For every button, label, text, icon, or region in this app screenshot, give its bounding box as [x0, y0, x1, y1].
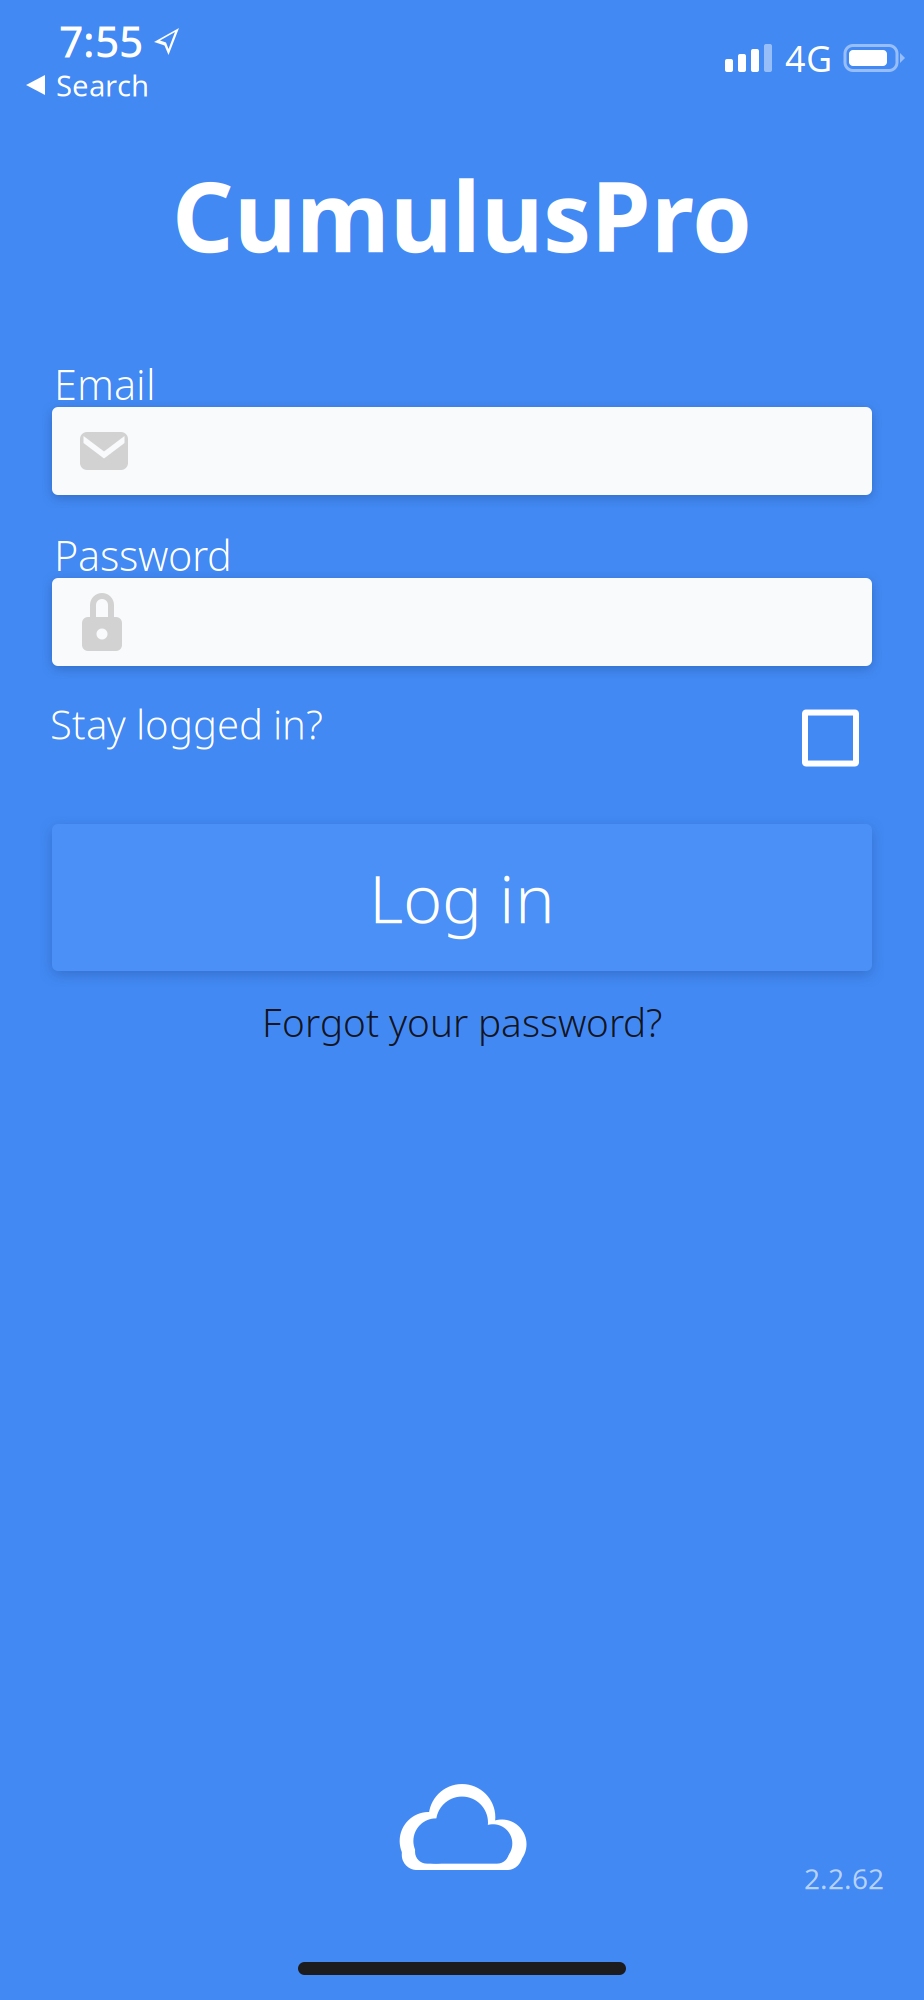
button[interactable]: Forgot your password? [0, 996, 924, 1048]
staticText: 4G [785, 34, 832, 82]
staticText: Search [56, 65, 149, 104]
button[interactable]: Stay logged in? [0, 682, 924, 766]
staticText: Password [54, 528, 232, 582]
button[interactable]: Search [0, 63, 924, 107]
staticText: Forgot your password? [262, 996, 662, 1048]
staticText: Log in [369, 853, 555, 942]
staticText: CumulusPro [172, 151, 752, 279]
staticText: 7:55 [59, 13, 143, 69]
staticText: Email [54, 357, 156, 411]
staticText: 2.2.62 [804, 1860, 884, 1897]
button[interactable]: Log in [52, 824, 872, 971]
staticText: Stay logged in? [50, 697, 323, 750]
